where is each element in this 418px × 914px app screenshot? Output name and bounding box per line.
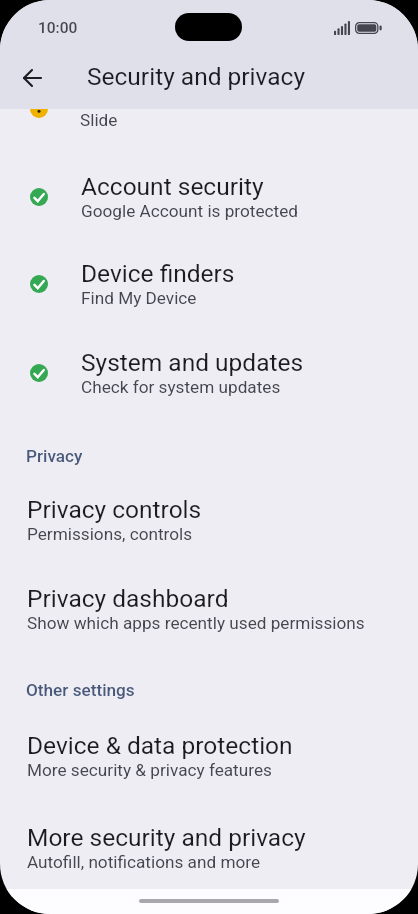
staticText: Privacy controls [27, 495, 202, 524]
staticText: Device & data protection [27, 731, 293, 760]
button[interactable]: Privacy dashboard [0, 569, 418, 639]
staticText: Autofill, notifications and more [27, 852, 261, 872]
staticText: Find My Device [81, 288, 197, 308]
staticText: Privacy [26, 446, 83, 466]
staticText: Google Account is protected [81, 201, 298, 221]
staticText: More security and privacy [27, 823, 306, 852]
staticText: Privacy dashboard [27, 584, 229, 613]
staticText: Other settings [26, 680, 135, 700]
button[interactable]: More security and privacy [0, 808, 418, 878]
button[interactable]: System and updates [0, 333, 418, 403]
button[interactable]: Back [8, 54, 56, 102]
button[interactable]: Account security [0, 157, 418, 227]
staticText: Slide [80, 110, 118, 130]
staticText: More security & privacy features [27, 760, 272, 780]
staticText: 10:00 [38, 19, 78, 37]
staticText: Show which apps recently used permission… [27, 613, 365, 633]
staticText: System and updates [81, 348, 304, 377]
staticText: Security and privacy [87, 62, 306, 91]
button[interactable]: Device finders [0, 244, 418, 314]
button[interactable]: Privacy controls [0, 480, 418, 550]
staticText: Device finders [81, 259, 235, 288]
button[interactable]: Device & data protection [0, 716, 418, 786]
staticText: Account security [81, 172, 264, 201]
staticText: Check for system updates [81, 377, 281, 397]
staticText: Permissions, controls [27, 524, 193, 544]
